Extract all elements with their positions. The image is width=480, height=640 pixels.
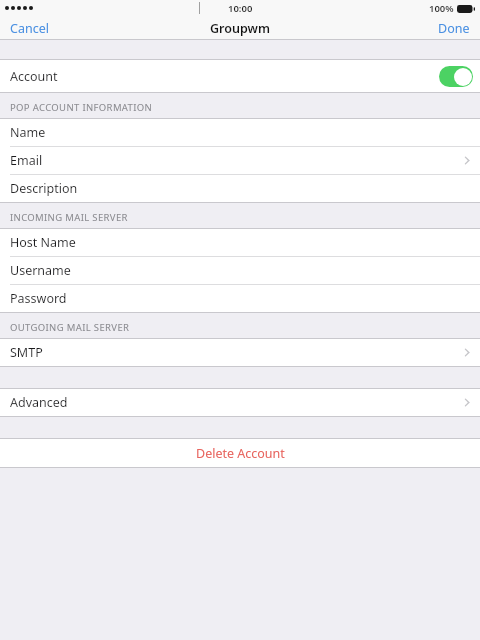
staticText: Delete Account — [196, 445, 285, 462]
button[interactable]: Username — [0, 257, 480, 284]
staticText: POP ACCOUNT INFORMATION — [10, 101, 153, 114]
button[interactable]: SMTP — [0, 339, 480, 366]
button[interactable]: Name — [0, 119, 480, 146]
staticText: INCOMING MAIL SERVER — [10, 211, 128, 224]
button[interactable]: Email — [0, 147, 480, 174]
staticText: Username — [10, 262, 71, 279]
staticText: SMTP — [10, 344, 43, 361]
staticText: Groupwm — [210, 20, 270, 37]
staticText: OUTGOING MAIL SERVER — [10, 321, 130, 334]
button[interactable]: Cancel — [0, 16, 59, 40]
staticText: 100% — [429, 2, 454, 15]
staticText: Name — [10, 124, 46, 141]
button[interactable]: Password — [0, 285, 480, 312]
staticText: Account — [10, 68, 58, 85]
button[interactable]: Account — [0, 60, 480, 92]
staticText: 10:00 — [228, 2, 253, 15]
staticText: Advanced — [10, 394, 68, 411]
button[interactable]: Description — [0, 175, 480, 202]
button[interactable]: Advanced — [0, 389, 480, 416]
staticText: Done — [438, 20, 470, 37]
staticText: Host Name — [10, 234, 76, 251]
button[interactable]: Done — [428, 16, 480, 40]
button[interactable]: Account enabled — [439, 66, 473, 87]
staticText: Password — [10, 290, 67, 307]
button[interactable]: Delete Account — [0, 439, 480, 467]
staticText: Cancel — [10, 20, 49, 37]
button[interactable]: Host Name — [0, 229, 480, 256]
staticText: Description — [10, 180, 78, 197]
staticText: Email — [10, 152, 43, 169]
